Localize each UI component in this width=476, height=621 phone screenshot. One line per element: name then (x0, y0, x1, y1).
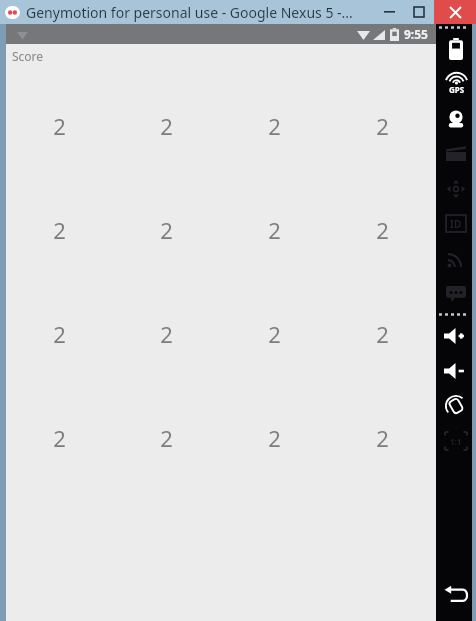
staticText: 2 (53, 423, 66, 453)
staticText: 2 (268, 319, 281, 349)
staticText: 2 (160, 111, 173, 141)
button[interactable]: Battery (436, 31, 476, 66)
button[interactable]: 2 (220, 282, 328, 386)
button[interactable]: Network (436, 241, 476, 276)
button[interactable]: Volume up (436, 318, 476, 353)
staticText: 2 (53, 111, 66, 141)
button[interactable]: 2 (328, 282, 436, 386)
button[interactable]: 2 (113, 178, 220, 282)
button[interactable]: D-pad (436, 171, 476, 206)
button[interactable]: Close (434, 0, 476, 24)
button[interactable]: 2 (6, 74, 113, 178)
staticText: 2 (376, 215, 389, 245)
button[interactable]: 2 (220, 178, 328, 282)
staticText: 2 (268, 423, 281, 453)
staticText: 2 (160, 215, 173, 245)
button[interactable]: Minimize (374, 0, 404, 24)
staticText: 2 (268, 111, 281, 141)
staticText: Genymotion for personal use - Google Nex… (26, 3, 353, 22)
staticText: 2 (268, 215, 281, 245)
button[interactable]: 2 (113, 282, 220, 386)
button[interactable]: 2 (6, 386, 113, 490)
staticText: 2 (376, 111, 389, 141)
button[interactable]: Video (436, 136, 476, 171)
staticText: 2 (53, 215, 66, 245)
button[interactable]: Back (436, 576, 476, 611)
button[interactable]: 2 (328, 178, 436, 282)
button[interactable]: 2 (113, 74, 220, 178)
staticText: 2 (376, 423, 389, 453)
button[interactable]: Maximize (404, 0, 434, 24)
staticText: 2 (160, 319, 173, 349)
button[interactable]: Rotate (436, 388, 476, 423)
button[interactable]: Scale 1:1 (436, 423, 476, 458)
button[interactable]: Identifiers (436, 206, 476, 241)
button[interactable]: 2 (113, 386, 220, 490)
button[interactable]: 2 (328, 74, 436, 178)
button[interactable]: 2 (6, 282, 113, 386)
staticText: 9:55 (404, 26, 428, 42)
button[interactable]: 2 (220, 386, 328, 490)
staticText: GPS (449, 84, 465, 95)
button[interactable]: Volume down (436, 353, 476, 388)
staticText: Score (12, 48, 44, 64)
button[interactable]: 2 (220, 74, 328, 178)
button[interactable]: 2 (328, 386, 436, 490)
staticText: ID (450, 217, 462, 231)
staticText: 2 (376, 319, 389, 349)
button[interactable]: Camera (436, 101, 476, 136)
staticText: 2 (160, 423, 173, 453)
staticText: 2 (53, 319, 66, 349)
button[interactable]: 2 (6, 178, 113, 282)
staticText: 1:1 (450, 436, 462, 447)
button[interactable]: Messages (436, 276, 476, 311)
button[interactable]: GPS (436, 66, 476, 101)
